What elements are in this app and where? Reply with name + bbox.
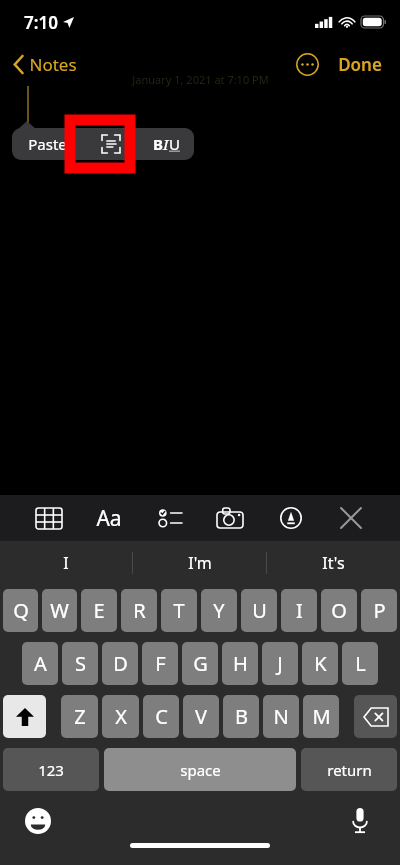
button[interactable]: Q: [3, 589, 38, 632]
button[interactable]: Checklist: [148, 496, 192, 540]
staticText: Aa: [96, 504, 122, 533]
button[interactable]: Paste: [12, 128, 83, 160]
button[interactable]: U: [241, 589, 277, 632]
button[interactable]: Markup: [269, 496, 313, 540]
button[interactable]: space: [104, 748, 296, 791]
button[interactable]: Camera: [208, 496, 252, 540]
button[interactable]: 123: [3, 748, 99, 791]
button[interactable]: J: [262, 642, 298, 685]
button[interactable]: N: [263, 695, 299, 738]
button[interactable]: I: [0, 541, 132, 585]
button[interactable]: V: [183, 695, 219, 738]
button[interactable]: S: [62, 642, 98, 685]
button[interactable]: Backspace: [354, 695, 397, 738]
staticText: V: [195, 703, 207, 730]
button[interactable]: E: [81, 589, 117, 632]
staticText: January 1, 2021 at 7:10 PM: [132, 72, 269, 87]
staticText: E: [93, 597, 105, 624]
staticText: Done: [338, 53, 382, 76]
button[interactable]: Close keyboard: [329, 496, 373, 540]
button[interactable]: T: [161, 589, 197, 632]
staticText: U: [169, 134, 180, 154]
button[interactable]: B: [223, 695, 259, 738]
staticText: W: [50, 597, 69, 624]
button[interactable]: D: [102, 642, 138, 685]
button[interactable]: Emoji: [22, 805, 54, 837]
button[interactable]: R: [121, 589, 157, 632]
button[interactable]: P: [361, 589, 397, 632]
staticText: I: [163, 134, 169, 154]
staticText: G: [193, 650, 208, 677]
button[interactable]: A: [22, 642, 58, 685]
button[interactable]: More options: [290, 47, 324, 81]
staticText: P: [373, 597, 386, 624]
staticText: H: [233, 650, 248, 677]
button[interactable]: Text format: [87, 496, 131, 540]
button[interactable]: I'm: [133, 541, 266, 585]
button[interactable]: X: [102, 695, 139, 738]
staticText: M: [312, 703, 331, 730]
staticText: Y: [213, 597, 225, 624]
button[interactable]: C: [143, 695, 179, 738]
staticText: D: [113, 650, 128, 677]
staticText: R: [133, 597, 146, 624]
staticText: S: [75, 650, 86, 677]
button[interactable]: W: [42, 589, 77, 632]
staticText: U: [252, 597, 267, 624]
staticText: F: [155, 650, 166, 677]
staticText: O: [331, 597, 347, 624]
button[interactable]: It's: [267, 541, 400, 585]
staticText: B: [153, 134, 163, 154]
button[interactable]: Z: [61, 695, 98, 738]
button[interactable]: Scan text: [83, 128, 139, 160]
staticText: J: [277, 650, 283, 677]
staticText: T: [173, 597, 185, 624]
staticText: I: [63, 552, 69, 574]
button[interactable]: Y: [201, 589, 237, 632]
button[interactable]: L: [342, 642, 378, 685]
button[interactable]: Notes: [8, 49, 83, 80]
staticText: It's: [322, 552, 345, 574]
button[interactable]: I: [281, 589, 317, 632]
button[interactable]: F: [142, 642, 178, 685]
button[interactable]: B: [139, 128, 194, 160]
staticText: K: [314, 650, 327, 677]
button[interactable]: Shift: [3, 695, 46, 738]
staticText: C: [155, 703, 168, 730]
button[interactable]: H: [222, 642, 258, 685]
button[interactable]: return: [301, 748, 397, 791]
staticText: A: [34, 650, 47, 677]
button[interactable]: G: [182, 642, 218, 685]
staticText: L: [355, 650, 366, 677]
staticText: I'm: [188, 552, 212, 574]
staticText: 123: [38, 760, 64, 780]
staticText: Q: [13, 597, 29, 624]
staticText: Z: [74, 703, 86, 730]
staticText: B: [235, 703, 248, 730]
staticText: return: [327, 760, 372, 780]
staticText: 7:10: [24, 11, 58, 34]
button[interactable]: K: [302, 642, 338, 685]
button[interactable]: Dictation: [344, 805, 376, 837]
button[interactable]: O: [321, 589, 357, 632]
button[interactable]: Done: [334, 49, 386, 80]
button[interactable]: Table: [27, 496, 71, 540]
staticText: Notes: [29, 53, 77, 76]
staticText: I: [296, 597, 303, 624]
button[interactable]: M: [303, 695, 339, 738]
staticText: space: [180, 760, 221, 780]
staticText: N: [273, 703, 289, 730]
staticText: Paste: [28, 134, 67, 154]
staticText: X: [115, 703, 127, 730]
